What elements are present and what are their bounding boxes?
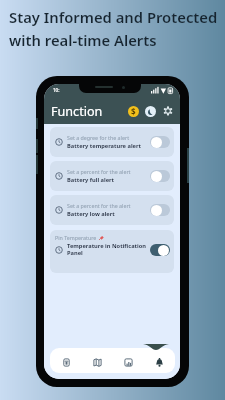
button[interactable]: Statistics	[113, 348, 144, 373]
button[interactable]: Dark mode	[145, 106, 156, 117]
button[interactable]: Settings	[162, 105, 174, 117]
staticText: Battery temperature alert	[67, 142, 141, 150]
button[interactable]: Pin Temperature	[50, 230, 174, 273]
staticText: Pin Temperature	[55, 234, 97, 241]
staticText: Set a degree for the alert	[67, 134, 130, 141]
button[interactable]: Coins	[128, 106, 139, 117]
button[interactable]: Map	[82, 348, 113, 373]
button[interactable]: Disabled	[150, 204, 170, 216]
button[interactable]: Disabled	[150, 170, 170, 182]
button[interactable]: Set a percent for the alert	[50, 161, 174, 191]
button[interactable]: Battery	[50, 348, 82, 373]
staticText: Set a percent for the alert	[67, 168, 131, 175]
button[interactable]: Disabled	[150, 136, 170, 148]
button[interactable]: Alerts	[144, 348, 175, 373]
button[interactable]: Set a percent for the alert	[50, 195, 174, 225]
staticText: Temperature in Notification Panel	[67, 242, 149, 257]
staticText: 10:	[53, 87, 60, 93]
staticText: with real-time Alerts	[9, 30, 157, 50]
button[interactable]: Set a degree for the alert	[50, 127, 174, 157]
staticText: Battery low alert	[67, 210, 115, 218]
staticText: $	[131, 106, 136, 117]
staticText: Set a percent for the alert	[67, 202, 131, 209]
staticText: Function	[51, 103, 103, 120]
staticText: Stay Informed and Protected	[9, 7, 218, 27]
button[interactable]: Enabled	[150, 244, 170, 256]
staticText: Battery full alert	[67, 176, 115, 184]
